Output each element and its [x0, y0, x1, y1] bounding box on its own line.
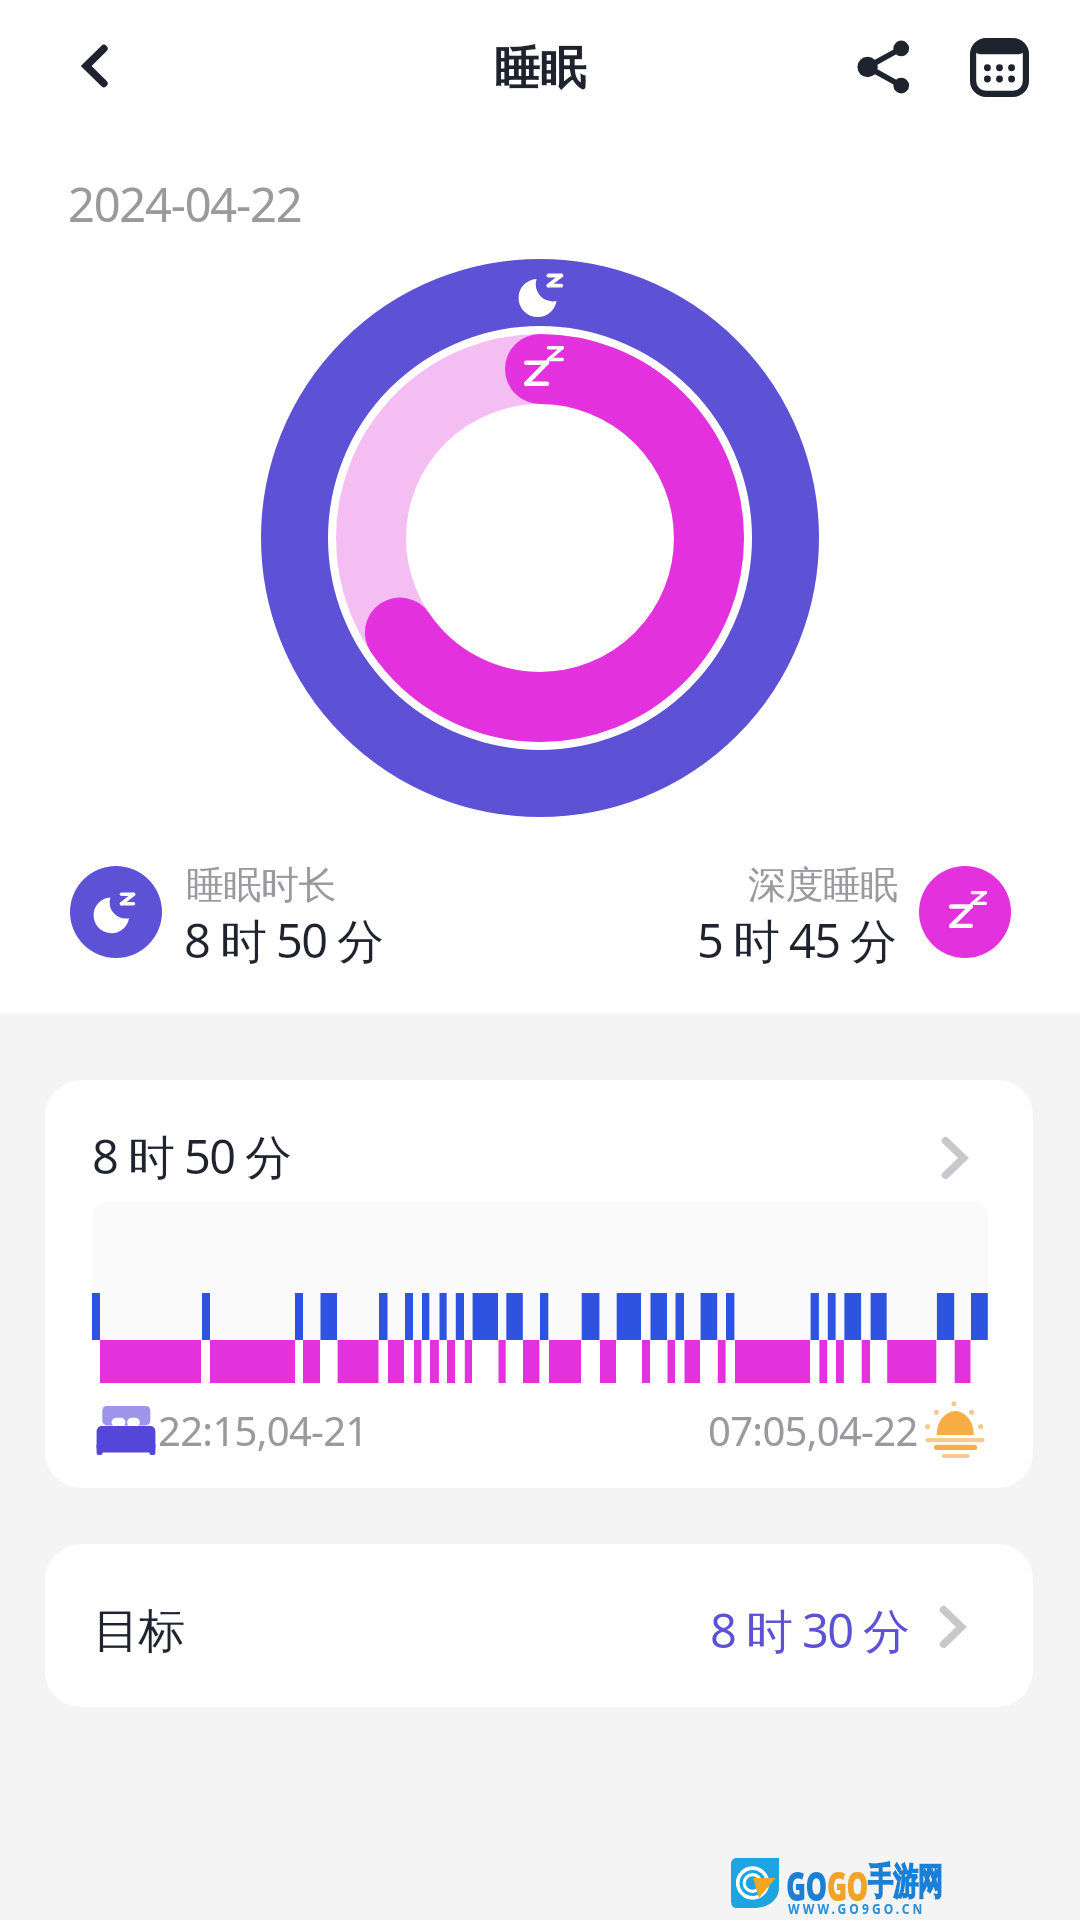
button[interactable]: Calendar [956, 24, 1042, 110]
staticText: 深度睡眠 [748, 861, 898, 909]
staticText: 睡眠时长 [186, 861, 336, 909]
button[interactable]: Sleep duration [70, 866, 162, 958]
staticText: 8 时 30 分 [710, 1598, 909, 1662]
staticText: 22:15,04-21 [158, 1403, 368, 1457]
button[interactable]: Deep sleep [919, 866, 1011, 958]
staticText: GO [786, 1858, 827, 1913]
button[interactable]: Share [842, 24, 928, 110]
button[interactable]: Back [55, 26, 135, 106]
button[interactable]: 目标 [45, 1544, 1033, 1707]
staticText: 睡眠 [494, 40, 586, 98]
staticText: GO [827, 1858, 868, 1913]
staticText: 5 时 45 分 [697, 908, 896, 972]
staticText: 8 时 50 分 [92, 1124, 291, 1188]
staticText: 目标 [93, 1602, 184, 1661]
staticText: 2024-04-22 [68, 172, 302, 236]
staticText: 07:05,04-22 [708, 1403, 918, 1457]
staticText: 手游网 [868, 1858, 942, 1904]
staticText: 8 时 50 分 [184, 908, 383, 972]
staticText: WWW.GO9GO.CN [788, 1899, 926, 1918]
button[interactable]: 8 时 50 分 [45, 1080, 1033, 1488]
